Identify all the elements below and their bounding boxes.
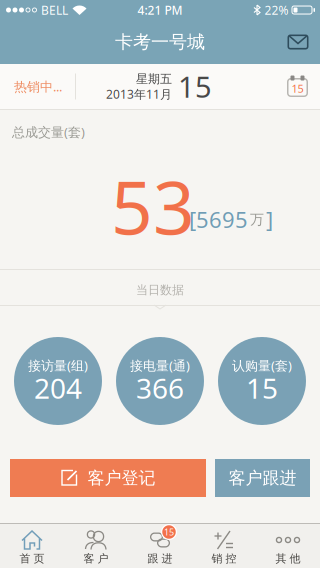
staticText: 销 控 [211,552,236,565]
staticText: 星期五 [136,71,172,86]
button[interactable]: 客户跟进 [215,459,310,497]
staticText: 366 [136,369,184,407]
staticText: 其 他 [275,552,300,565]
staticText: 万 [250,211,264,228]
staticText: 接电量(通) [130,357,190,374]
staticText: 15 [164,526,174,538]
staticText: 15 [291,81,303,96]
staticText: BELL [41,2,68,18]
staticText: 2013年11月 [106,86,172,102]
staticText: 热销中... [14,78,62,95]
staticText: 15 [178,67,212,106]
staticText: 认购量(套) [232,357,292,374]
staticText: 客户登记 [87,467,155,489]
staticText: 53 [111,157,195,256]
staticText: 22% [264,2,288,18]
button[interactable]: 其 他 [256,524,320,568]
staticText: 总成交量(套) [12,123,85,141]
button[interactable]: 首 页 [0,524,64,568]
staticText: 跟 进 [147,552,172,565]
button[interactable]: 销 控 [192,524,256,568]
button[interactable]: Messages [287,34,320,50]
staticText: 当日数据 [136,282,184,297]
staticText: 首 页 [19,552,44,565]
staticText: [5695 [189,204,248,234]
staticText: 客 户 [83,552,108,565]
staticText: 4:21 PM [137,2,182,18]
button[interactable]: 跟 进 [128,524,192,568]
staticText: 卡考一号城 [115,31,205,53]
staticText: 客户跟进 [228,467,296,489]
staticText: 接访量(组) [28,357,88,374]
button[interactable]: Calendar [286,75,320,97]
staticText: ] [266,204,273,234]
staticText: 15 [246,369,278,407]
button[interactable]: 客户登记 [10,459,206,497]
button[interactable]: 客 户 [64,524,128,568]
staticText: 204 [34,369,82,407]
button[interactable]: 热销中... [0,64,62,109]
